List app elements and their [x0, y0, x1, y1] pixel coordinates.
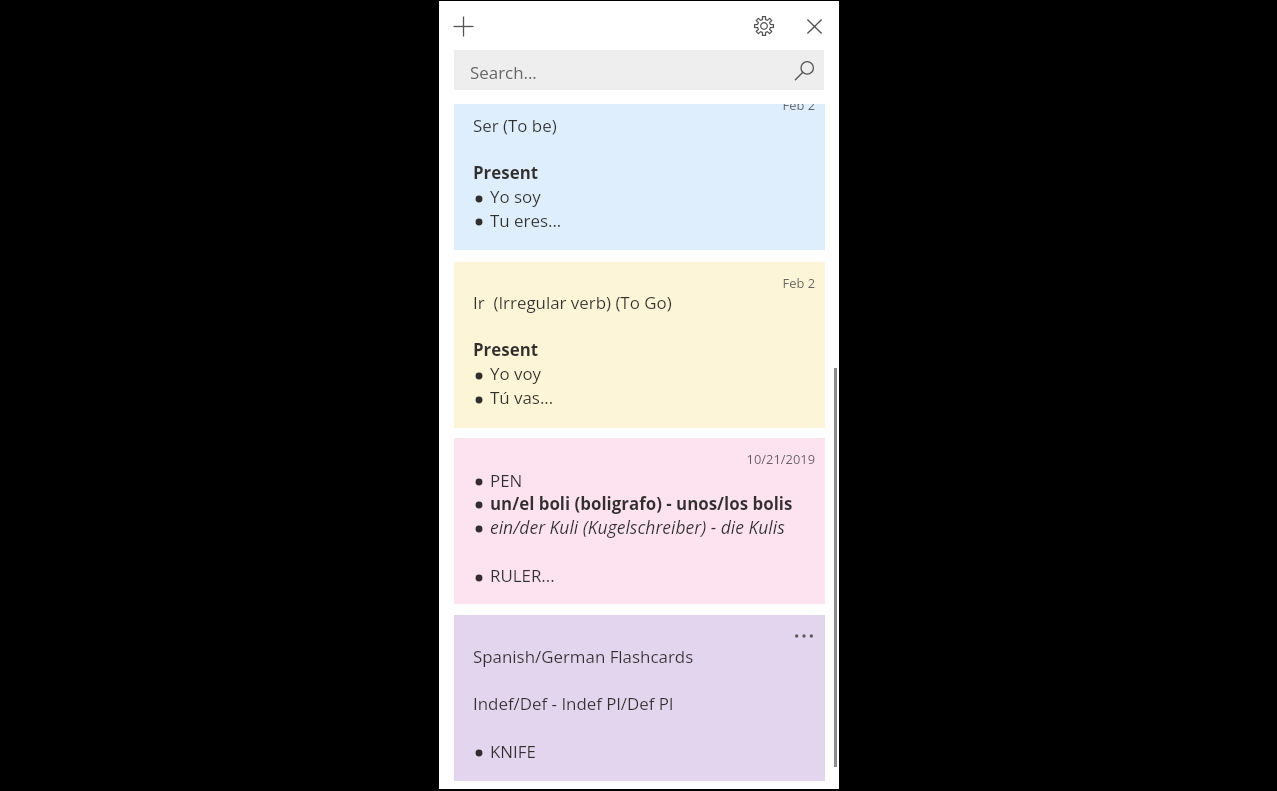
staticText: Tu eres... [490, 209, 562, 232]
button[interactable]: New note [443, 6, 483, 46]
button[interactable]: Note options [454, 615, 825, 781]
staticText: ein/der Kuli (Kugelschreiber) - die Kuli… [490, 515, 785, 539]
staticText: Present [473, 161, 539, 184]
staticText: Feb 2 [615, 274, 815, 292]
button[interactable]: Search notes [454, 50, 824, 90]
staticText: Ir (Irregular verb) (To Go) [473, 291, 672, 314]
staticText: Ser (To be) [473, 114, 557, 137]
staticText: Yo soy [490, 185, 541, 208]
staticText: Spanish/German Flashcards [473, 645, 694, 668]
staticText: Tú vas... [490, 386, 554, 409]
staticText: Yo voy [490, 362, 542, 385]
staticText: un/el boli (boligrafo) - unos/los bolis [490, 492, 793, 515]
button[interactable]: Feb 2 [454, 104, 825, 250]
staticText: PEN [490, 469, 523, 492]
staticText: KNIFE [490, 740, 536, 763]
staticText: RULER... [490, 564, 555, 587]
button[interactable]: Close [794, 6, 834, 46]
button[interactable]: Settings [744, 6, 784, 46]
staticText: Search... [470, 61, 537, 84]
staticText: Indef/Def - Indef Pl/Def Pl [473, 692, 674, 715]
staticText: 10/21/2019 [615, 450, 815, 468]
staticText: Present [473, 338, 539, 361]
button[interactable]: 10/21/2019 [454, 438, 825, 604]
button[interactable]: Feb 2 [454, 262, 825, 428]
staticText: Feb 2 [615, 104, 815, 114]
button[interactable]: Note options [787, 619, 821, 653]
